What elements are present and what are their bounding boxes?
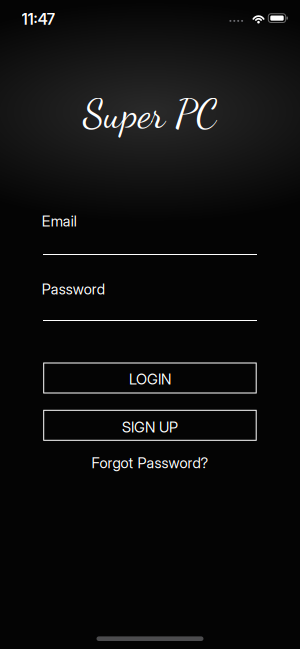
button[interactable]: LOGIN xyxy=(44,363,256,393)
staticText: Forgot Password? xyxy=(91,454,208,472)
button[interactable]: SIGN UP xyxy=(44,410,256,440)
staticText: LOGIN xyxy=(129,370,171,388)
staticText: 11:47 xyxy=(22,10,55,28)
button[interactable]: Forgot Password? xyxy=(91,454,208,472)
staticText: Email xyxy=(42,212,77,230)
staticText: Super PC xyxy=(83,90,217,138)
staticText: SIGN UP xyxy=(122,418,178,436)
staticText: Password xyxy=(42,280,105,298)
